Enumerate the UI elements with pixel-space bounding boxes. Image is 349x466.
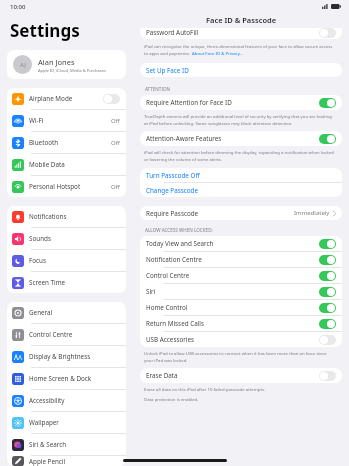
staticText: Home Screen & Dock: [29, 374, 120, 383]
staticText: ATTENTION: [145, 86, 171, 92]
button[interactable]: Today View and Search: [140, 236, 342, 251]
staticText: or lowering the volume of some alerts.: [144, 156, 222, 162]
button[interactable]: Control Centre: [7, 324, 126, 345]
button[interactable]: Notifications: [7, 206, 126, 227]
staticText: Siri & Search: [29, 440, 120, 449]
staticText: Notifications: [29, 212, 120, 221]
staticText: AJ: [20, 61, 26, 69]
button[interactable]: Siri: [140, 284, 342, 299]
button[interactable]: Home Control: [140, 300, 342, 315]
button[interactable]: Siri & Search: [7, 434, 126, 455]
staticText: Return Missed Calls: [146, 319, 319, 328]
staticText: Off: [111, 139, 120, 147]
button[interactable]: USB Accessories: [140, 332, 342, 347]
staticText: Apple Pencil: [29, 457, 120, 466]
button[interactable]: Home Screen & Dock: [7, 368, 126, 389]
staticText: TrueDepth camera will provide an additio…: [144, 113, 332, 119]
button[interactable]: Sounds: [7, 228, 126, 249]
button[interactable]: Accessibility: [7, 390, 126, 411]
staticText: Erase all data on this iPad after 10 fai…: [144, 386, 266, 392]
staticText: Require Passcode: [146, 209, 294, 218]
button[interactable]: Control Centre: [140, 268, 342, 283]
staticText: Turn Passcode Off: [146, 171, 200, 180]
staticText: Control Centre: [146, 271, 319, 280]
button[interactable]: Wallpaper: [7, 412, 126, 433]
staticText: Mobile Data: [29, 160, 120, 169]
staticText: to apps and payments.: [144, 50, 192, 56]
staticText: Accessibility: [29, 396, 120, 405]
button[interactable]: Display & Brightness: [7, 346, 126, 367]
staticText: Require Attention for Face ID: [146, 98, 319, 107]
button[interactable]: Mobile Data: [7, 154, 126, 175]
button[interactable]: Personal Hotspot: [7, 176, 126, 197]
staticText: Home Control: [146, 303, 319, 312]
staticText: your iPad was locked.: [144, 357, 188, 363]
staticText: Set Up Face ID: [146, 66, 189, 75]
staticText: Notification Centre: [146, 255, 319, 264]
staticText: Unlock iPad to allow USB accessories to …: [144, 350, 327, 356]
staticText: Alan Jones: [38, 57, 75, 67]
staticText: Screen Time: [29, 278, 120, 287]
button[interactable]: Attention-Aware Features: [140, 131, 342, 146]
staticText: Off: [111, 183, 120, 191]
staticText: Siri: [146, 287, 319, 296]
staticText: Attention-Aware Features: [146, 134, 319, 143]
button[interactable]: Apple Pencil: [7, 456, 126, 466]
staticText: Face ID & Passcode: [206, 15, 277, 25]
button[interactable]: Screen Time: [7, 272, 126, 293]
staticText: iPad will check for attention before dim…: [144, 149, 334, 155]
button[interactable]: Wi-Fi: [7, 110, 126, 131]
staticText: Off: [111, 117, 120, 125]
staticText: Control Centre: [29, 330, 120, 339]
button[interactable]: About Face ID & Privacy...: [192, 50, 244, 56]
staticText: Today View and Search: [146, 239, 319, 248]
staticText: 10:00: [10, 3, 26, 11]
staticText: Focus: [29, 256, 120, 265]
button[interactable]: Off: [103, 94, 120, 104]
button[interactable]: Bluetooth: [7, 132, 126, 153]
button[interactable]: Notification Centre: [140, 252, 342, 267]
button[interactable]: Set Up Face ID: [140, 63, 342, 77]
button[interactable]: Turn Passcode Off: [140, 168, 342, 182]
button[interactable]: Return Missed Calls: [140, 316, 342, 331]
button[interactable]: Require Attention for Face ID: [140, 95, 342, 110]
staticText: Settings: [10, 19, 80, 42]
staticText: Sounds: [29, 234, 120, 243]
button[interactable]: AJ: [7, 50, 126, 79]
staticText: Wi-Fi: [29, 116, 111, 125]
staticText: Password AutoFill: [146, 28, 199, 37]
staticText: iPad can recognise the unique, three-dim…: [144, 43, 333, 49]
staticText: Display & Brightness: [29, 352, 120, 361]
staticText: Apple ID, iCloud, Media & Purchases: [38, 68, 106, 73]
button[interactable]: Erase Data: [140, 368, 342, 383]
staticText: Erase Data: [146, 371, 319, 380]
staticText: Wallpaper: [29, 418, 120, 427]
staticText: General: [29, 308, 120, 317]
staticText: Data protection is enabled.: [144, 396, 199, 402]
button[interactable]: Focus: [7, 250, 126, 271]
button[interactable]: General: [7, 302, 126, 323]
button[interactable]: Require Passcode: [140, 206, 342, 220]
button[interactable]: Change Passcode: [140, 183, 342, 197]
button[interactable]: Airplane Mode: [7, 88, 126, 109]
staticText: USB Accessories: [146, 335, 319, 344]
staticText: Change Passcode: [146, 186, 198, 195]
button[interactable]: Password AutoFill: [140, 28, 342, 39]
staticText: Airplane Mode: [29, 94, 103, 103]
staticText: Bluetooth: [29, 138, 111, 147]
staticText: at iPad before unlocking. Some sunglasse…: [144, 120, 293, 126]
staticText: Immediately: [294, 209, 330, 217]
staticText: Personal Hotspot: [29, 182, 111, 191]
staticText: ALLOW ACCESS WHEN LOCKED:: [145, 227, 213, 233]
